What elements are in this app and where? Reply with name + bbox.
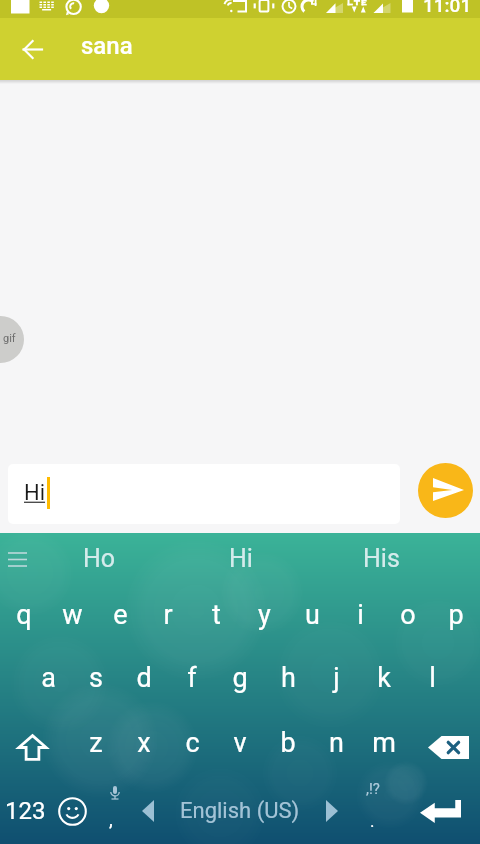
staticText: 11:01 [423,0,472,12]
button[interactable]: y [240,586,288,644]
button[interactable]: w [48,586,96,644]
button[interactable]: Keyboard menu [0,534,36,584]
staticText: . [370,811,375,831]
button[interactable]: l [408,649,456,707]
button[interactable]: Send [418,463,473,518]
staticText: u [305,599,320,631]
button[interactable]: z [72,714,120,772]
staticText: i [357,599,364,631]
button[interactable]: g [216,649,264,707]
staticText: h [281,662,296,694]
button[interactable]: k [360,649,408,707]
button[interactable]: f [168,649,216,707]
button[interactable]: Shift [0,718,64,776]
button[interactable]: n [312,714,360,772]
button[interactable]: ,!? [349,778,400,844]
button[interactable]: p [432,586,480,644]
button[interactable]: Hi [170,533,311,583]
staticText: t [212,599,221,631]
staticText: b [280,727,296,759]
button[interactable]: v [216,714,264,772]
staticText: r [163,599,173,631]
button[interactable]: e [96,586,144,644]
button[interactable]: m [360,714,408,772]
staticText: w [62,599,83,631]
button[interactable]: His [311,533,452,583]
staticText: o [400,599,416,631]
button[interactable]: s [72,649,120,707]
button[interactable]: q [0,586,48,644]
staticText: j [333,662,340,694]
button[interactable]: GIF [0,316,24,363]
button[interactable]: h [264,649,312,707]
staticText: d [136,662,152,694]
staticText: 123 [5,797,46,825]
button[interactable]: Previous language [132,778,164,844]
button[interactable]: Back [0,18,64,80]
staticText: v [233,727,247,759]
staticText: x [137,727,151,759]
button[interactable]: j [312,649,360,707]
staticText: a [41,662,56,694]
button[interactable]: d [120,649,168,707]
button[interactable]: Voice input [94,778,136,844]
button[interactable]: Next language [315,778,349,844]
staticText: Hi [24,480,46,506]
button[interactable]: b [264,714,312,772]
staticText: , [109,808,113,830]
staticText: c [185,727,200,759]
staticText: ,!? [366,780,380,798]
button[interactable]: t [192,586,240,644]
staticText: e [113,599,128,631]
button[interactable]: a [24,649,72,707]
staticText: n [329,727,344,759]
staticText: q [16,599,32,631]
staticText: p [448,599,464,631]
button[interactable]: Hi [8,464,400,524]
button[interactable]: x [120,714,168,772]
button[interactable]: Backspace [416,718,480,776]
staticText: Ho [83,544,116,573]
staticText: Hi [229,544,253,573]
staticText: z [89,727,103,759]
button[interactable]: English (US) [164,778,315,844]
staticText: f [187,662,197,694]
button[interactable]: i [336,586,384,644]
staticText: English (US) [180,798,300,824]
staticText: gif [3,332,16,345]
staticText: s [89,662,103,694]
staticText: k [377,662,391,694]
button[interactable]: o [384,586,432,644]
button[interactable]: Emoji [50,778,94,844]
staticText: y [258,599,271,631]
staticText: His [363,544,400,573]
staticText: sana [81,32,133,60]
staticText: m [372,727,396,759]
button[interactable]: 123 [0,778,50,844]
button[interactable]: r [144,586,192,644]
staticText: g [232,662,248,694]
button[interactable]: Ho [28,533,170,583]
staticText: l [429,662,436,694]
button[interactable]: u [288,586,336,644]
button[interactable]: Enter [400,778,480,844]
button[interactable]: c [168,714,216,772]
